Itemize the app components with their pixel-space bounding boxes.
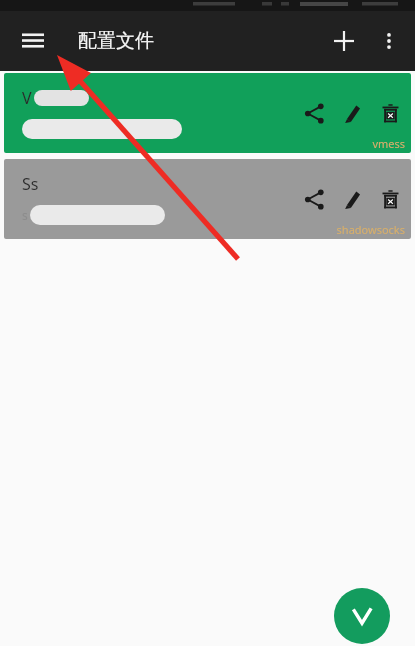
button[interactable]: Delete <box>371 94 409 132</box>
staticText: s <box>22 207 28 223</box>
button[interactable]: Ss <box>4 159 411 239</box>
button[interactable]: Edit <box>333 180 371 218</box>
staticText: V <box>22 87 32 109</box>
button[interactable]: Start V2Ray <box>334 588 390 644</box>
button[interactable]: Share <box>295 180 333 218</box>
button[interactable]: V <box>4 73 411 153</box>
button[interactable]: Open navigation drawer <box>10 18 56 64</box>
button[interactable]: Add profile <box>321 18 367 64</box>
button[interactable]: Delete <box>371 180 409 218</box>
button[interactable]: Edit <box>333 94 371 132</box>
button[interactable]: More options <box>367 19 411 63</box>
staticText: Ss <box>22 173 39 195</box>
staticText: shadowsocks <box>336 222 405 237</box>
button[interactable]: Share <box>295 94 333 132</box>
staticText: vmess <box>372 136 405 151</box>
staticText: 配置文件 <box>78 29 154 53</box>
